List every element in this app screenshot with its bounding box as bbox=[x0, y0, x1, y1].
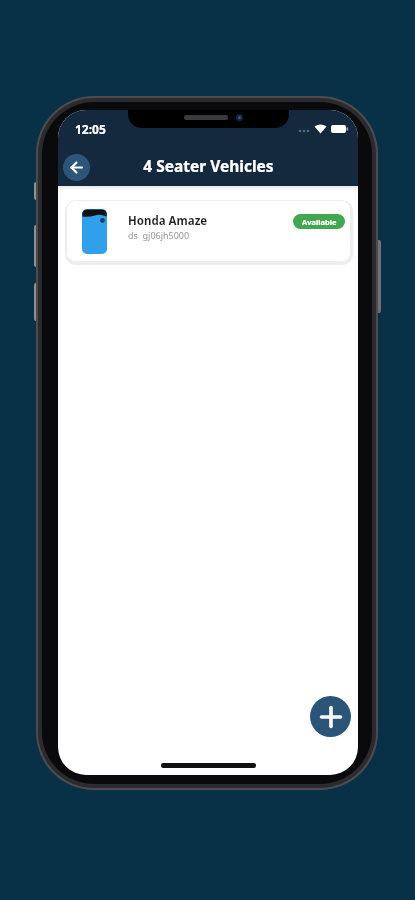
staticText: Honda Amaze bbox=[128, 213, 208, 229]
staticText: 4 Seater Vehicles bbox=[143, 155, 274, 176]
button[interactable]: Honda Amaze bbox=[66, 200, 351, 262]
button[interactable] bbox=[310, 696, 351, 737]
staticText: Available bbox=[302, 217, 337, 227]
button[interactable] bbox=[63, 154, 90, 181]
staticText: ds gj06jh5000 bbox=[128, 229, 190, 241]
staticText: 12:05 bbox=[75, 121, 106, 137]
